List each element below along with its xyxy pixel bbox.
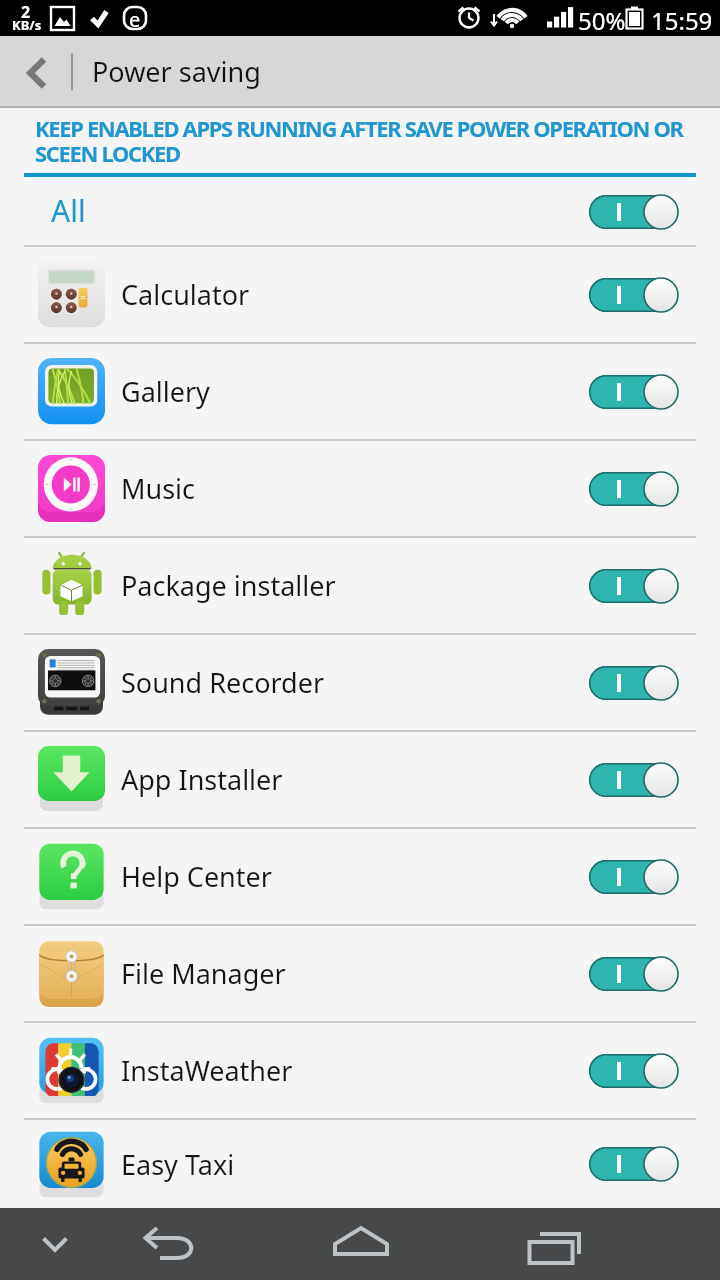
button[interactable]: Back (110, 1208, 230, 1280)
staticText: 15:59 (651, 4, 713, 37)
staticText: KB/s (12, 16, 42, 34)
button[interactable]: Sound Recorder (0, 635, 720, 730)
button[interactable]: Music (0, 441, 720, 536)
button[interactable]: Recent apps (490, 1208, 720, 1280)
staticText: InstaWeather (121, 1052, 293, 1089)
staticText: KEEP ENABLED APPS RUNNING AFTER SAVE POW… (35, 113, 683, 168)
staticText: Sound Recorder (121, 664, 325, 701)
staticText: Calculator (121, 276, 250, 313)
button[interactable]: Navigate up (0, 36, 71, 106)
button[interactable]: Package installer (0, 538, 720, 633)
button[interactable]: Hide keyboard (0, 1208, 110, 1280)
button[interactable]: App Installer (0, 732, 720, 827)
staticText: Power saving (92, 53, 261, 90)
button[interactable]: Calculator (0, 247, 720, 342)
staticText: Music (121, 470, 196, 507)
button[interactable]: Easy Taxi (0, 1120, 720, 1208)
button[interactable]: InstaWeather (0, 1023, 720, 1118)
button[interactable]: Help Center (0, 829, 720, 924)
staticText: Help Center (121, 858, 272, 895)
staticText: 2 (21, 1, 31, 23)
staticText: Easy Taxi (121, 1146, 235, 1183)
staticText: e (129, 6, 141, 33)
button[interactable]: Gallery (0, 344, 720, 439)
button[interactable]: File Manager (0, 926, 720, 1021)
button[interactable]: Home (230, 1208, 490, 1280)
staticText: App Installer (121, 761, 283, 798)
staticText: Package installer (121, 567, 336, 604)
button[interactable]: All (0, 178, 720, 245)
staticText: All (51, 190, 86, 231)
staticText: 50% (578, 4, 626, 37)
staticText: Gallery (121, 373, 210, 410)
staticText: File Manager (121, 955, 286, 992)
